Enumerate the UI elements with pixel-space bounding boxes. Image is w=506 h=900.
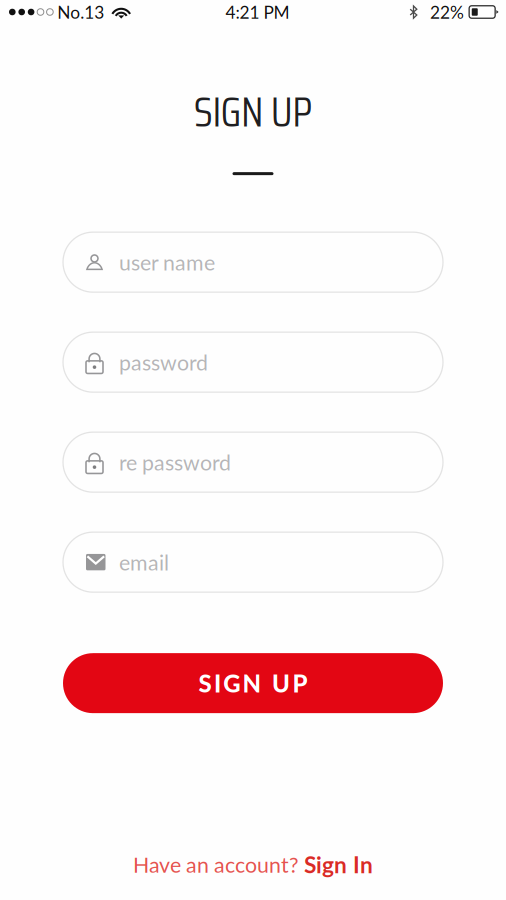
button[interactable]: re password	[63, 432, 443, 492]
staticText: email	[119, 549, 169, 575]
staticText: Have an account?	[133, 852, 304, 877]
staticText: No.13	[57, 2, 104, 22]
staticText: re password	[119, 449, 231, 475]
button[interactable]: Have an account?	[123, 845, 383, 884]
staticText: password	[119, 349, 208, 375]
staticText: SIGN UP	[194, 78, 312, 145]
staticText: 22%	[430, 2, 464, 22]
button[interactable]: user name	[63, 232, 443, 292]
staticText: user name	[119, 249, 215, 275]
staticText: 4:21 PM	[225, 2, 289, 22]
button[interactable]: email	[63, 532, 443, 592]
button[interactable]: SIGN UP	[63, 653, 443, 713]
staticText: Sign In	[304, 851, 373, 878]
staticText: SIGN UP	[199, 669, 307, 698]
button[interactable]: password	[63, 332, 443, 392]
